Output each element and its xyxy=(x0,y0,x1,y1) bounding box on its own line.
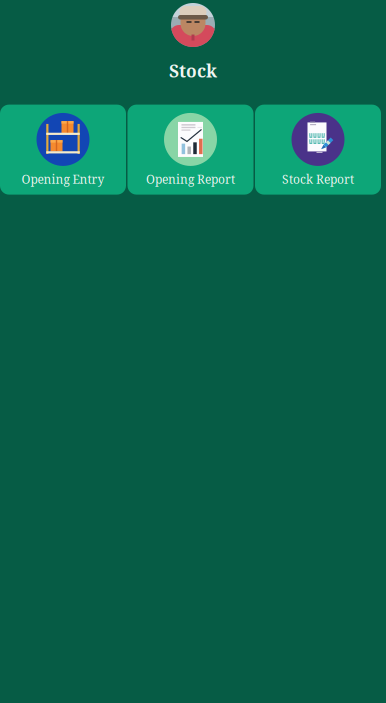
button[interactable]: Opening Report xyxy=(127,105,253,195)
staticText: Opening Report xyxy=(146,171,235,187)
button[interactable]: Opening Entry xyxy=(0,105,126,195)
staticText: Opening Entry xyxy=(21,171,104,187)
button[interactable]: Profile xyxy=(171,3,215,47)
staticText: Stock Report xyxy=(282,171,354,187)
button[interactable]: Stock Report xyxy=(255,105,381,195)
staticText: Stock xyxy=(169,59,217,83)
